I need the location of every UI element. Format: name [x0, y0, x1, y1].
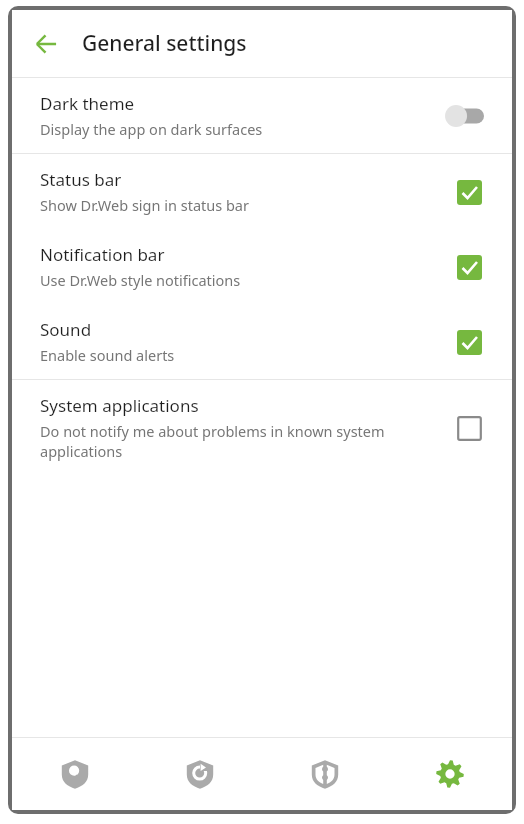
staticText: Use Dr.Web style notifications [40, 270, 241, 290]
button[interactable]: Update [137, 738, 262, 810]
button[interactable]: Settings [387, 738, 512, 810]
staticText: Status bar [40, 168, 122, 191]
staticText: Sound [40, 318, 92, 341]
button[interactable]: Notification bar [12, 229, 512, 304]
button[interactable]: Dark theme toggle [432, 99, 486, 133]
button[interactable]: Status bar [12, 154, 512, 229]
staticText: Do not notify me about problems in known… [40, 421, 440, 461]
button[interactable]: Checked [452, 175, 486, 209]
button[interactable]: Scanner [12, 738, 137, 810]
button[interactable]: Tools [262, 738, 387, 810]
button[interactable]: Dark theme [12, 78, 512, 153]
button[interactable]: Back [24, 22, 68, 66]
button[interactable]: Checked [452, 325, 486, 359]
button[interactable]: Sound [12, 304, 512, 379]
button[interactable]: System applications [12, 380, 512, 475]
button[interactable]: Checked [452, 250, 486, 284]
staticText: Enable sound alerts [40, 345, 175, 365]
staticText: System applications [40, 394, 199, 417]
staticText: Show Dr.Web sign in status bar [40, 195, 249, 215]
staticText: General settings [82, 29, 247, 58]
button[interactable]: Unchecked [452, 411, 486, 445]
staticText: Notification bar [40, 243, 165, 266]
staticText: Display the app on dark surfaces [40, 119, 263, 139]
staticText: Dark theme [40, 92, 135, 115]
